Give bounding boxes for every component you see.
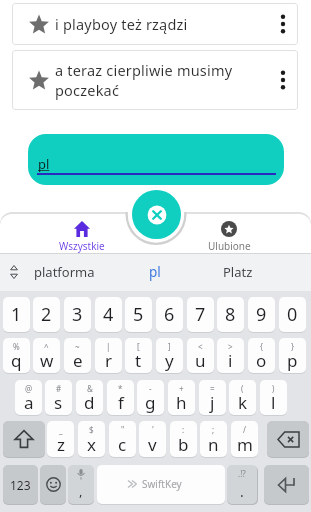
button[interactable]: a teraz cierpliwie musimy <box>12 50 298 110</box>
button[interactable]: i playboy też rządzi <box>12 3 298 45</box>
staticText: / <box>243 424 246 435</box>
staticText: ) <box>272 383 275 394</box>
button[interactable]: % <box>3 338 30 373</box>
button[interactable]: < <box>187 338 214 373</box>
button[interactable]: , <box>68 465 94 504</box>
staticText: : <box>182 424 185 435</box>
button[interactable]: 9 <box>248 297 275 332</box>
staticText: | <box>106 341 111 352</box>
button[interactable]: Wszystkie <box>20 215 144 253</box>
staticText: Wszystkie <box>59 239 105 253</box>
staticText: Platz <box>223 263 253 281</box>
button[interactable]: 2 <box>33 297 60 332</box>
button[interactable]: 8 <box>217 297 244 332</box>
staticText: ^ <box>44 341 49 352</box>
staticText: m <box>237 433 253 456</box>
button[interactable]: " <box>109 421 136 457</box>
staticText: > <box>228 341 233 352</box>
staticText: 7 <box>195 302 206 327</box>
button[interactable] <box>132 190 181 239</box>
button[interactable]: : <box>170 421 197 457</box>
staticText: w <box>40 349 54 372</box>
button[interactable]: 5 <box>125 297 152 332</box>
staticText: s <box>54 391 63 414</box>
button[interactable]: * <box>107 380 134 415</box>
staticText: a teraz cierpliwie musimy <box>55 60 233 80</box>
button[interactable] <box>264 465 309 504</box>
button[interactable]: @ <box>15 380 42 415</box>
staticText: .!? <box>238 468 246 479</box>
button[interactable]: 6 <box>156 297 183 332</box>
button[interactable]: .!? <box>227 465 257 504</box>
staticText: Ulubione <box>208 239 251 253</box>
button[interactable]: 3 <box>64 297 91 332</box>
button[interactable]: } <box>279 338 306 373</box>
staticText: 9 <box>256 302 267 327</box>
staticText: b <box>178 433 189 456</box>
button[interactable]: = <box>199 380 226 415</box>
button[interactable]: 0 <box>279 297 306 332</box>
button[interactable] <box>271 68 295 92</box>
button[interactable]: > <box>217 338 244 373</box>
button[interactable]: pl <box>110 253 200 291</box>
staticText: 5 <box>133 302 144 327</box>
staticText: + <box>179 383 184 394</box>
staticText: { <box>260 341 264 352</box>
button[interactable] <box>40 465 66 504</box>
staticText: } <box>291 341 295 352</box>
button[interactable]: - <box>137 380 164 415</box>
button[interactable]: Platz <box>205 253 271 291</box>
staticText: 1 <box>11 302 22 327</box>
button[interactable]: ~ <box>64 338 91 373</box>
staticText: SwiftKey <box>142 477 182 491</box>
staticText: platforma <box>34 263 95 281</box>
button[interactable]: platforma <box>26 253 102 291</box>
button[interactable]: $ <box>78 421 105 457</box>
button[interactable]: SwiftKey <box>97 465 225 504</box>
button[interactable]: | <box>95 338 122 373</box>
button[interactable]: 4 <box>95 297 122 332</box>
staticText: < <box>198 341 203 352</box>
staticText: , <box>79 482 83 500</box>
staticText: u <box>195 349 206 372</box>
button[interactable]: / <box>231 421 258 457</box>
staticText: c <box>118 433 127 456</box>
staticText: r <box>105 349 113 372</box>
button[interactable]: ] <box>156 338 183 373</box>
button[interactable]: ^ <box>33 338 60 373</box>
staticText: g <box>145 391 156 414</box>
staticText: e <box>73 349 83 372</box>
button[interactable]: { <box>248 338 275 373</box>
staticText: 3 <box>72 302 83 327</box>
button[interactable]: ' <box>139 421 166 457</box>
button[interactable]: _ <box>47 421 74 457</box>
staticText: ; <box>212 424 215 435</box>
staticText: ' <box>152 424 154 435</box>
button[interactable] <box>3 421 45 457</box>
button[interactable]: 123 <box>3 465 38 504</box>
button[interactable]: ) <box>260 380 287 415</box>
button[interactable]: 7 <box>187 297 214 332</box>
button[interactable]: Ulubione <box>167 215 291 253</box>
button[interactable] <box>9 265 19 279</box>
staticText: [ <box>137 341 140 352</box>
staticText: 8 <box>225 302 236 327</box>
button[interactable]: # <box>45 380 72 415</box>
staticText: z <box>57 433 65 456</box>
button[interactable]: + <box>168 380 195 415</box>
button[interactable]: ( <box>229 380 256 415</box>
button[interactable] <box>267 421 309 457</box>
button[interactable] <box>271 12 295 36</box>
button[interactable]: & <box>76 380 103 415</box>
button[interactable]: 1 <box>3 297 30 332</box>
staticText: a <box>24 391 34 414</box>
staticText: & <box>87 383 93 394</box>
staticText: o <box>256 349 267 372</box>
button[interactable]: pl <box>28 134 284 185</box>
button[interactable]: [ <box>125 338 152 373</box>
staticText: " <box>121 424 125 435</box>
staticText: p <box>287 349 298 372</box>
button[interactable]: ; <box>200 421 227 457</box>
staticText: i playboy też rządzi <box>55 14 188 34</box>
staticText: 2 <box>41 302 52 327</box>
